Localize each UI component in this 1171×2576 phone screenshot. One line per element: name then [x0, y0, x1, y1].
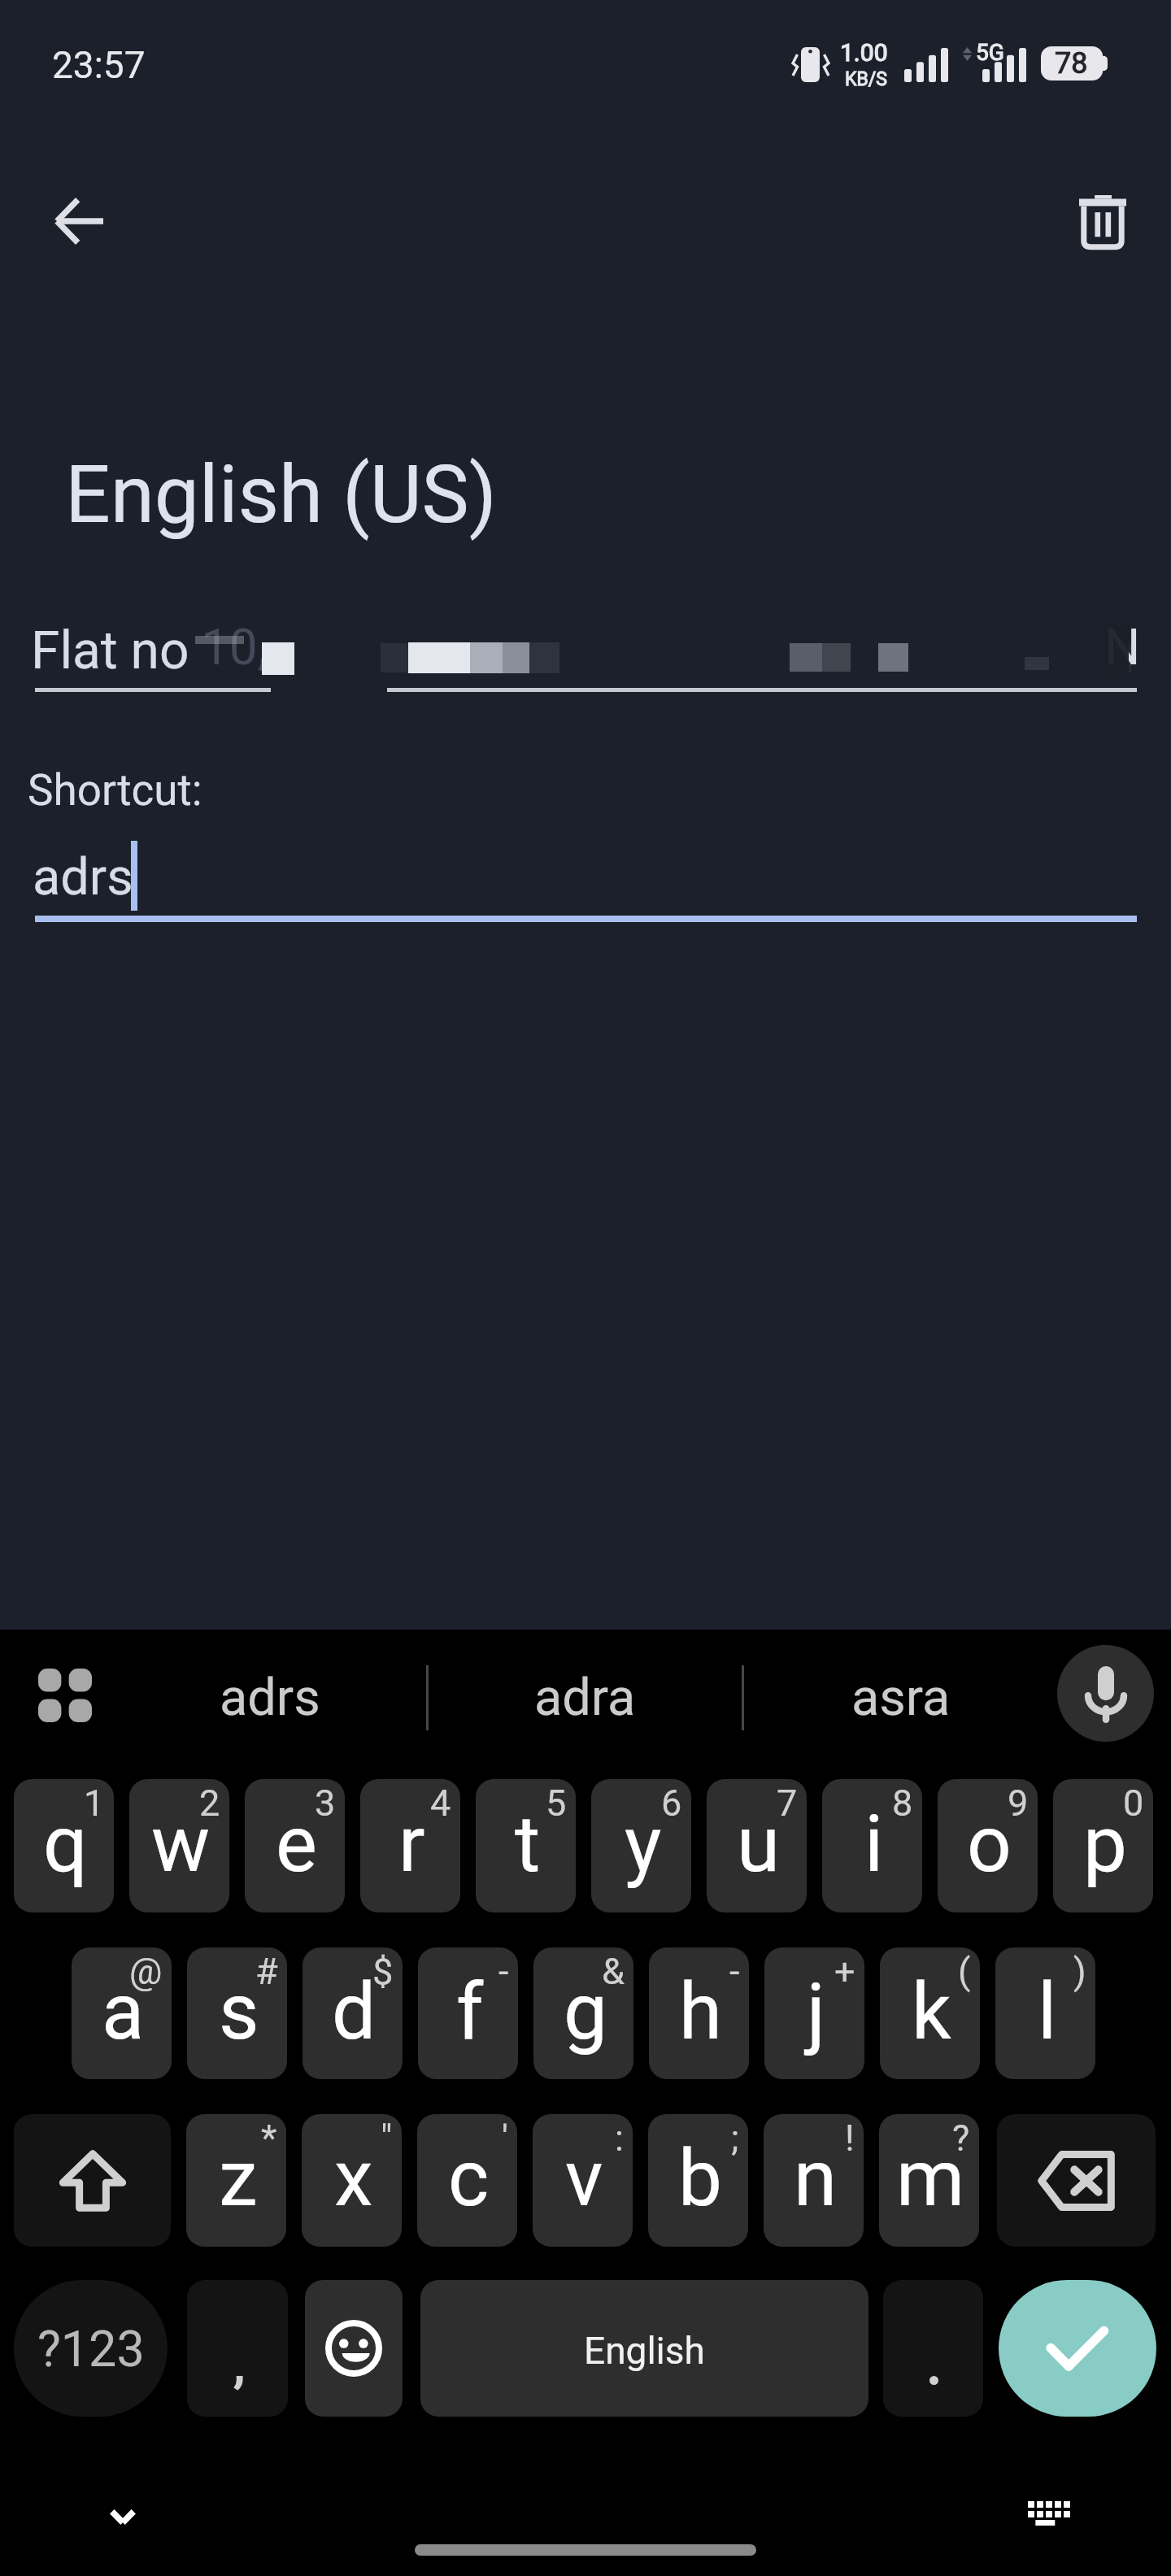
- staticText: 1: [84, 1782, 105, 1825]
- button[interactable]: 0: [1053, 1779, 1153, 1912]
- button[interactable]: -: [649, 1947, 749, 2079]
- button[interactable]: Hide keyboard: [75, 2469, 171, 2565]
- staticText: *: [261, 2117, 277, 2160]
- button[interactable]: 2: [129, 1779, 229, 1912]
- button[interactable]: 3: [245, 1779, 345, 1912]
- staticText: f: [456, 1966, 484, 2058]
- staticText: h: [679, 1966, 722, 2058]
- staticText: v: [565, 2133, 603, 2225]
- staticText: -: [498, 1950, 509, 1993]
- staticText: @: [129, 1950, 163, 1993]
- staticText: s: [219, 1966, 259, 2058]
- button[interactable]: Clipboard: [20, 1651, 110, 1740]
- staticText: (: [958, 1950, 971, 1993]
- staticText: 1.00: [840, 38, 888, 67]
- button[interactable]: Delete: [1054, 172, 1151, 270]
- button[interactable]: ': [417, 2114, 517, 2247]
- button[interactable]: Switch keyboard: [1001, 2465, 1097, 2561]
- staticText: o: [967, 1799, 1012, 1891]
- staticText: n: [794, 2133, 838, 2225]
- button[interactable]: !: [764, 2114, 864, 2247]
- button[interactable]: -: [418, 1947, 518, 2079]
- staticText: ?123: [37, 2320, 145, 2378]
- staticText: $: [372, 1950, 394, 1993]
- button[interactable]: :: [533, 2114, 633, 2247]
- staticText: p: [1083, 1799, 1127, 1891]
- button[interactable]: adra: [429, 1643, 742, 1753]
- button[interactable]: Back: [31, 172, 128, 270]
- button[interactable]: @: [72, 1947, 172, 2079]
- staticText: 8: [892, 1782, 913, 1825]
- staticText: 4: [430, 1782, 451, 1825]
- button[interactable]: ): [995, 1947, 1095, 2079]
- button[interactable]: Enter: [999, 2280, 1156, 2417]
- staticText: g: [564, 1966, 607, 2058]
- staticText: #: [255, 1950, 278, 1993]
- staticText: ': [502, 2117, 508, 2160]
- button[interactable]: $: [303, 1947, 403, 2079]
- button[interactable]: *: [186, 2114, 286, 2247]
- button[interactable]: 8: [822, 1779, 922, 1912]
- staticText: k: [912, 1966, 951, 2058]
- button[interactable]: (: [880, 1947, 980, 2079]
- staticText: Shortcut:: [28, 765, 202, 816]
- staticText: KB/S: [845, 68, 887, 90]
- staticText: ,: [234, 2335, 245, 2395]
- staticText: u: [737, 1799, 780, 1891]
- staticText: e: [276, 1799, 317, 1891]
- staticText: x: [334, 2133, 373, 2225]
- button[interactable]: ": [302, 2114, 402, 2247]
- button[interactable]: 7: [707, 1779, 807, 1912]
- staticText: +: [834, 1950, 855, 1993]
- button[interactable]: 1: [14, 1779, 114, 1912]
- button[interactable]: 9: [938, 1779, 1038, 1912]
- staticText: 5: [546, 1782, 567, 1825]
- button[interactable]: Shift: [14, 2114, 171, 2247]
- staticText: c: [448, 2133, 490, 2225]
- button[interactable]: Backspace: [997, 2114, 1156, 2247]
- staticText: 2: [199, 1782, 220, 1825]
- staticText: j: [807, 1966, 825, 2058]
- button[interactable]: 6: [591, 1779, 691, 1912]
- button[interactable]: ?: [879, 2114, 979, 2247]
- staticText: a: [102, 1966, 145, 2058]
- staticText: 10,: [201, 617, 268, 677]
- staticText: English (US): [65, 448, 497, 542]
- staticText: 6: [661, 1782, 682, 1825]
- staticText: l: [1038, 1966, 1057, 2058]
- staticText: i: [864, 1799, 884, 1891]
- staticText: N: [1104, 617, 1141, 677]
- button[interactable]: &: [533, 1947, 633, 2079]
- staticText: English: [584, 2329, 705, 2373]
- button[interactable]: asra: [744, 1643, 1057, 1753]
- staticText: y: [625, 1799, 662, 1891]
- button[interactable]: +: [764, 1947, 864, 2079]
- staticText: z: [219, 2133, 258, 2225]
- button[interactable]: adrs: [114, 1643, 426, 1753]
- button[interactable]: 5: [476, 1779, 576, 1912]
- button[interactable]: ;: [648, 2114, 748, 2247]
- button[interactable]: Voice input: [1057, 1645, 1154, 1742]
- button[interactable]: English: [420, 2280, 868, 2417]
- staticText: !: [845, 2117, 855, 2160]
- button[interactable]: ,: [187, 2280, 288, 2417]
- staticText: d: [332, 1966, 377, 2058]
- staticText: r: [398, 1799, 425, 1891]
- staticText: 23:57: [52, 43, 146, 87]
- staticText: ": [381, 2117, 393, 2160]
- button[interactable]: Period: [883, 2280, 983, 2417]
- staticText: ;: [731, 2117, 739, 2160]
- button[interactable]: Emoji: [305, 2280, 403, 2417]
- staticText: w: [151, 1799, 211, 1891]
- button[interactable]: ?123: [14, 2280, 168, 2417]
- staticText: 3: [315, 1782, 336, 1825]
- button[interactable]: 4: [360, 1779, 460, 1912]
- staticText: &: [602, 1950, 625, 1993]
- staticText: t: [515, 1799, 541, 1891]
- staticText: adrs: [220, 1668, 320, 1728]
- button[interactable]: #: [187, 1947, 287, 2079]
- staticText: Flat no: [31, 620, 189, 681]
- staticText: ): [1073, 1950, 1086, 1993]
- staticText: 0: [1123, 1782, 1144, 1825]
- staticText: 5G: [976, 39, 1004, 66]
